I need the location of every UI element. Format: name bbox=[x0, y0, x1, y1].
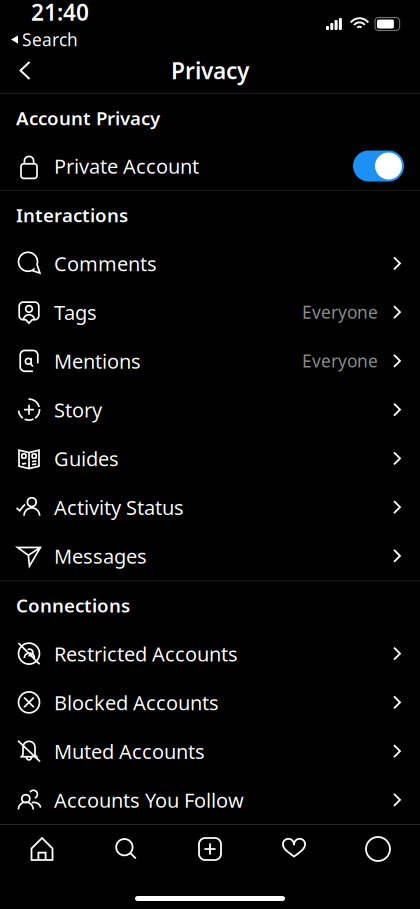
staticText: Interactions bbox=[16, 203, 128, 227]
button[interactable]: Muted Accounts bbox=[0, 727, 420, 776]
button[interactable]: Search bbox=[84, 825, 168, 873]
staticText: Private Account bbox=[54, 153, 199, 179]
staticText: Tags bbox=[54, 299, 97, 325]
button[interactable]: Comments bbox=[0, 239, 420, 288]
staticText: Activity Status bbox=[54, 494, 184, 520]
button[interactable]: Story bbox=[0, 385, 420, 434]
staticText: Mentions bbox=[54, 348, 141, 374]
staticText: Muted Accounts bbox=[54, 738, 205, 764]
staticText: Story bbox=[54, 396, 102, 423]
staticText: Privacy bbox=[171, 55, 249, 85]
staticText: Guides bbox=[54, 445, 119, 472]
button[interactable]: Mentions bbox=[0, 336, 420, 385]
button[interactable]: Private Account bbox=[353, 150, 404, 181]
button[interactable]: Restricted Accounts bbox=[0, 629, 420, 678]
button[interactable]: Blocked Accounts bbox=[0, 678, 420, 727]
staticText: Comments bbox=[54, 250, 157, 277]
staticText: Account Privacy bbox=[16, 106, 160, 130]
button[interactable]: Home bbox=[0, 825, 84, 873]
button[interactable]: Messages bbox=[0, 531, 420, 580]
button[interactable]: Back bbox=[0, 48, 46, 92]
staticText: Messages bbox=[54, 543, 147, 569]
staticText: Restricted Accounts bbox=[54, 640, 238, 667]
staticText: Accounts You Follow bbox=[54, 787, 244, 813]
button[interactable]: Tags bbox=[0, 288, 420, 337]
staticText: Connections bbox=[16, 593, 130, 618]
staticText: 21:40 bbox=[31, 0, 89, 27]
button[interactable]: Profile bbox=[336, 825, 420, 873]
button[interactable]: Activity bbox=[252, 825, 336, 873]
staticText: Everyone bbox=[302, 349, 378, 372]
button[interactable]: Create bbox=[168, 825, 252, 873]
staticText: Everyone bbox=[302, 301, 378, 324]
button[interactable]: Accounts You Follow bbox=[0, 775, 420, 824]
button[interactable]: Guides bbox=[0, 434, 420, 483]
button[interactable]: Activity Status bbox=[0, 483, 420, 532]
staticText: Blocked Accounts bbox=[54, 689, 219, 716]
staticText: Search bbox=[22, 28, 78, 51]
